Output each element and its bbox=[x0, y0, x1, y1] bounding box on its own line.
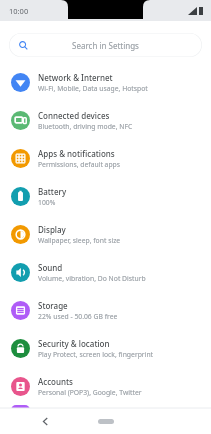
staticText: Apps & notifications bbox=[38, 148, 115, 159]
button[interactable] bbox=[0, 405, 211, 415]
staticText: Network & Internet bbox=[38, 72, 113, 83]
staticText: Permissions, default apps bbox=[38, 160, 121, 169]
staticText: Security & location bbox=[38, 338, 110, 349]
staticText: Wi-Fi, Mobile, Data usage, Hotspot bbox=[38, 84, 148, 93]
button[interactable]: Home bbox=[96, 416, 116, 426]
staticText: Battery bbox=[38, 186, 67, 197]
staticText: Volume, vibration, Do Not Disturb bbox=[38, 274, 146, 283]
staticText: Search in Settings bbox=[72, 40, 139, 51]
button[interactable]: Network & Internet bbox=[0, 63, 211, 101]
staticText: Display bbox=[38, 224, 66, 235]
button[interactable]: Storage bbox=[0, 291, 211, 329]
button[interactable]: Back bbox=[38, 414, 52, 428]
staticText: Personal (POP3), Google, Twitter bbox=[38, 388, 142, 397]
staticText: Wallpaper, sleep, font size bbox=[38, 236, 121, 245]
button[interactable]: Connected devices bbox=[0, 101, 211, 139]
button[interactable]: Security & location bbox=[0, 329, 211, 367]
staticText: Play Protect, screen lock, fingerprint bbox=[38, 350, 154, 359]
staticText: Bluetooth, driving mode, NFC bbox=[38, 122, 133, 131]
button[interactable]: Search in Settings bbox=[9, 33, 202, 57]
button[interactable]: Accounts bbox=[0, 367, 211, 405]
staticText: Storage bbox=[38, 300, 68, 311]
button[interactable]: Battery bbox=[0, 177, 211, 215]
staticText: 10:00 bbox=[9, 6, 29, 16]
button[interactable]: Sound bbox=[0, 253, 211, 291]
button[interactable]: Display bbox=[0, 215, 211, 253]
button[interactable]: Apps & notifications bbox=[0, 139, 211, 177]
staticText: Accounts bbox=[38, 376, 73, 387]
staticText: 100% bbox=[38, 198, 56, 207]
staticText: Sound bbox=[38, 262, 63, 273]
staticText: Connected devices bbox=[38, 110, 110, 121]
staticText: 22% used - 50.06 GB free bbox=[38, 312, 118, 321]
